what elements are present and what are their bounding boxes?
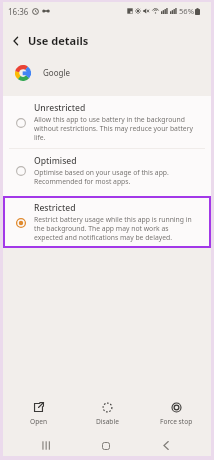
button[interactable]: Recent apps bbox=[35, 435, 57, 456]
staticText: Disable bbox=[96, 417, 119, 426]
staticText: Allow this app to use battery in the bac… bbox=[34, 115, 197, 142]
button[interactable]: Navigate up bbox=[5, 30, 27, 52]
staticText: Unrestricted bbox=[34, 102, 86, 114]
staticText: 56% bbox=[179, 6, 194, 16]
button[interactable]: Back bbox=[155, 435, 177, 456]
button[interactable]: Restricted bbox=[3, 196, 211, 248]
staticText: 16:36 bbox=[8, 6, 29, 17]
button[interactable]: Disable bbox=[73, 400, 142, 428]
button[interactable]: Open bbox=[3, 400, 73, 428]
staticText: Use details bbox=[28, 33, 89, 48]
button[interactable]: Force stop bbox=[142, 400, 211, 428]
staticText: Optimise based on your usage of this app… bbox=[34, 168, 197, 186]
button[interactable]: Home bbox=[95, 435, 117, 456]
staticText: Restrict battery usage while this app is… bbox=[34, 215, 197, 242]
staticText: Open bbox=[30, 417, 47, 426]
staticText: Optimised bbox=[34, 155, 77, 167]
staticText: Force stop bbox=[160, 417, 193, 426]
button[interactable]: Unrestricted bbox=[3, 96, 211, 148]
staticText: Google bbox=[43, 67, 70, 78]
button[interactable]: Optimised bbox=[3, 149, 211, 192]
staticText: Restricted bbox=[34, 202, 76, 214]
